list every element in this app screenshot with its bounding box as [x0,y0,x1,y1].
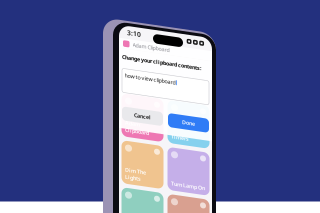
staticText: Turn Lamp On [171,159,205,166]
button[interactable]: Dim The Lights [121,126,163,169]
staticText: Clear Notifs [171,206,201,213]
button[interactable]: Adam Clipboard [121,79,163,122]
staticText: Adam Clipboard [125,105,149,119]
button[interactable]: Timers [167,79,209,122]
button[interactable]: Turn Lamp On [167,126,209,169]
staticText: how to view clipboard [124,58,175,65]
staticText: Change your clipboard contents: [122,39,201,47]
button[interactable]: Cancel [122,93,163,107]
staticText: Timers [171,112,189,119]
button[interactable]: clipboard [121,173,163,213]
staticText: Cancel [134,96,151,103]
button[interactable]: Done [168,93,209,107]
button[interactable]: Clear Notifs [167,173,209,213]
staticText: Adam Clipboard [132,26,169,33]
staticText: 3:10 [127,14,141,22]
staticText: Done [182,96,195,103]
